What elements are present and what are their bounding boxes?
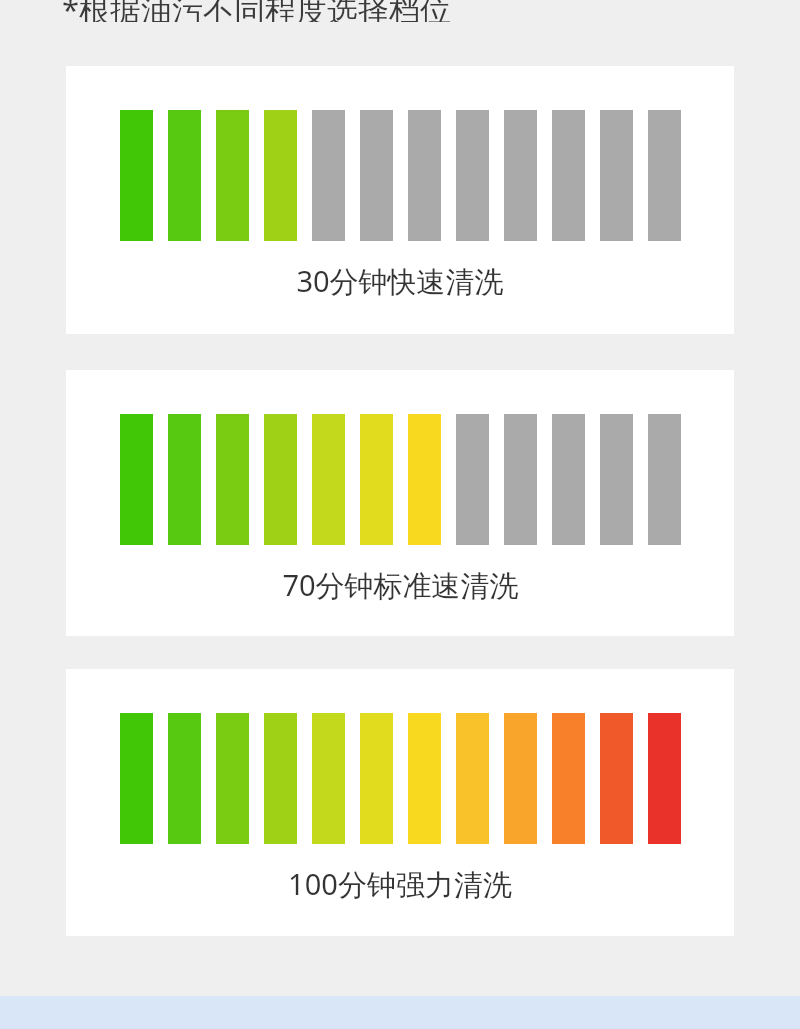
button[interactable]: 70分钟标准速清洗 [66,370,734,636]
staticText: 30分钟快速清洗 [296,261,504,301]
button[interactable]: 30分钟快速清洗 [66,66,734,334]
button[interactable]: 100分钟强力清洗 [66,669,734,936]
staticText: 100分钟强力清洗 [288,864,512,904]
staticText: 70分钟标准速清洗 [282,565,519,605]
staticText: *根据油污不同程度选择档位 [62,0,452,22]
